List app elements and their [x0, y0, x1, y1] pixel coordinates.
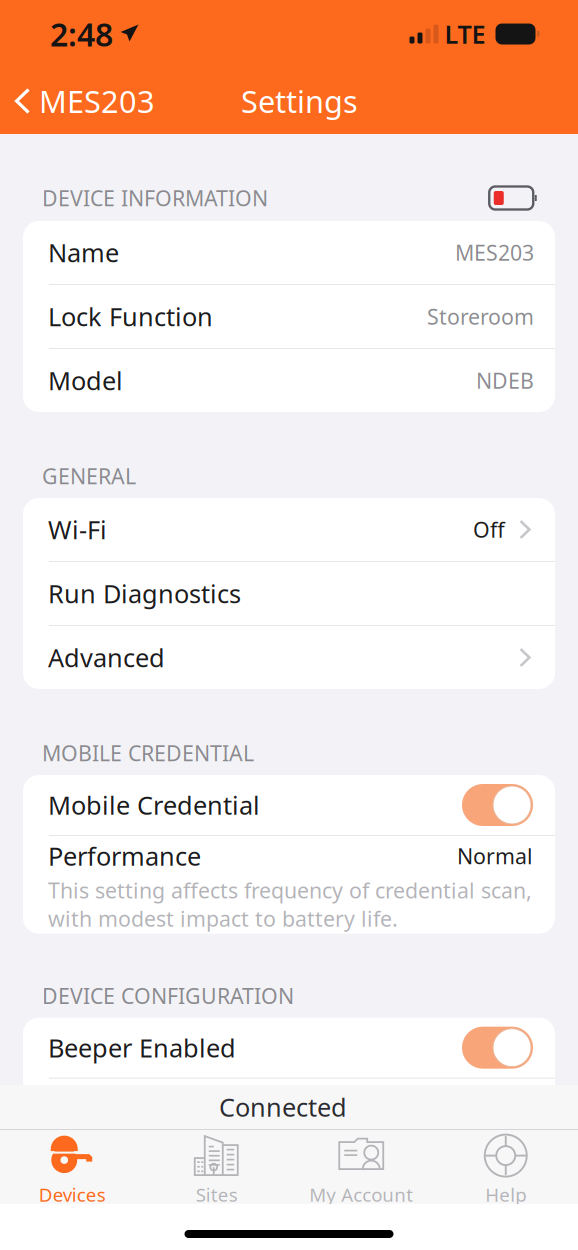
staticText: Wi-Fi: [48, 513, 107, 546]
staticText: Devices: [39, 1182, 106, 1207]
button[interactable]: Performance: [23, 836, 555, 934]
button[interactable]: Mobile Credential: [23, 775, 555, 835]
staticText: Beeper Enabled: [48, 1031, 236, 1064]
staticText: 2:48: [50, 13, 113, 55]
button[interactable]: Name: [23, 221, 555, 284]
staticText: My Account: [309, 1182, 413, 1207]
staticText: Sites: [196, 1182, 238, 1207]
button[interactable]: Advanced: [23, 626, 555, 689]
staticText: DEVICE INFORMATION: [42, 184, 268, 212]
staticText: Help: [485, 1182, 526, 1207]
staticText: NDEB: [476, 366, 534, 395]
staticText: DEVICE CONFIGURATION: [42, 981, 294, 1010]
button[interactable]: Devices: [0, 1130, 144, 1204]
staticText: with modest impact to battery life.: [48, 904, 398, 933]
button[interactable]: Lock Function: [23, 285, 555, 348]
staticText: Advanced: [48, 641, 165, 674]
staticText: Storeroom: [427, 302, 534, 331]
button[interactable]: Wi-Fi: [23, 498, 555, 561]
button[interactable]: Sites: [144, 1130, 289, 1204]
staticText: Mobile Credential: [48, 788, 260, 822]
staticText: Name: [48, 236, 119, 269]
staticText: LTE: [444, 17, 485, 51]
button[interactable]: Help: [433, 1130, 578, 1204]
staticText: Normal: [457, 842, 533, 870]
staticText: This setting affects frequency of creden…: [48, 876, 532, 904]
staticText: Connected: [219, 1090, 347, 1124]
staticText: MES203: [455, 238, 534, 267]
staticText: Off: [473, 515, 505, 544]
button[interactable]: MES203: [0, 72, 165, 130]
staticText: GENERAL: [42, 462, 136, 490]
staticText: MES203: [39, 81, 155, 121]
button[interactable]: Run Diagnostics: [23, 562, 555, 625]
staticText: MOBILE CREDENTIAL: [42, 739, 254, 767]
staticText: Model: [48, 364, 123, 397]
button[interactable]: Model: [23, 349, 555, 412]
staticText: Lock Function: [48, 300, 213, 333]
staticText: Performance: [48, 839, 201, 873]
button[interactable]: Beeper Enabled: [23, 1018, 555, 1078]
staticText: Settings: [241, 81, 358, 121]
staticText: Run Diagnostics: [48, 577, 241, 610]
button[interactable]: My Account: [289, 1130, 433, 1204]
